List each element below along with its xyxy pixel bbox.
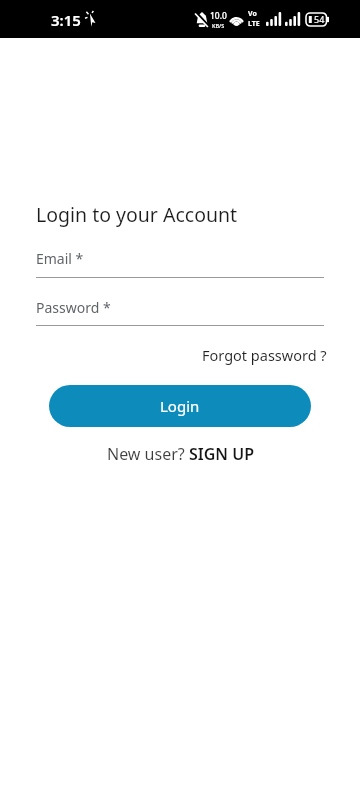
- staticText: KB/S: [212, 22, 225, 29]
- button[interactable]: SIGN UP: [189, 443, 254, 465]
- staticText: 54: [314, 13, 325, 25]
- button[interactable]: Email *: [36, 249, 324, 278]
- button[interactable]: Login: [49, 385, 311, 427]
- staticText: 3:15: [51, 10, 81, 30]
- staticText: Vo: [248, 9, 257, 19]
- button[interactable]: Password *: [36, 298, 324, 326]
- staticText: Email *: [36, 249, 84, 268]
- staticText: LTE: [248, 19, 260, 29]
- staticText: Password *: [36, 298, 111, 317]
- staticText: 10.0: [210, 10, 227, 22]
- button[interactable]: Forgot password ?: [202, 345, 327, 365]
- staticText: Login to your Account: [36, 201, 238, 228]
- staticText: Login: [160, 396, 200, 416]
- staticText: New user?: [107, 443, 189, 465]
